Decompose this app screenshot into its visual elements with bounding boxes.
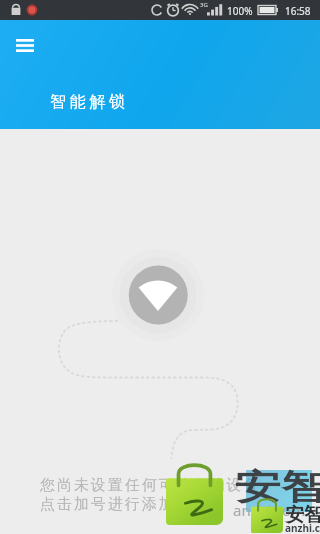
staticText: 点击加号进行添加 xyxy=(40,495,176,514)
staticText: 智能解锁 xyxy=(50,92,129,112)
staticText: 安智 xyxy=(285,503,320,527)
staticText: 安智 xyxy=(234,465,320,508)
staticText: 您尚未设置任何可信任的设备 xyxy=(40,476,261,495)
staticText: anzhi.com xyxy=(285,521,320,534)
staticText: 3G xyxy=(200,1,208,9)
button[interactable]: Open navigation menu xyxy=(9,30,40,61)
staticText: anzhi.com xyxy=(233,500,306,520)
staticText: 16:58 xyxy=(285,4,311,18)
button[interactable]: Add trusted device xyxy=(110,247,206,343)
staticText: 100% xyxy=(227,4,253,18)
